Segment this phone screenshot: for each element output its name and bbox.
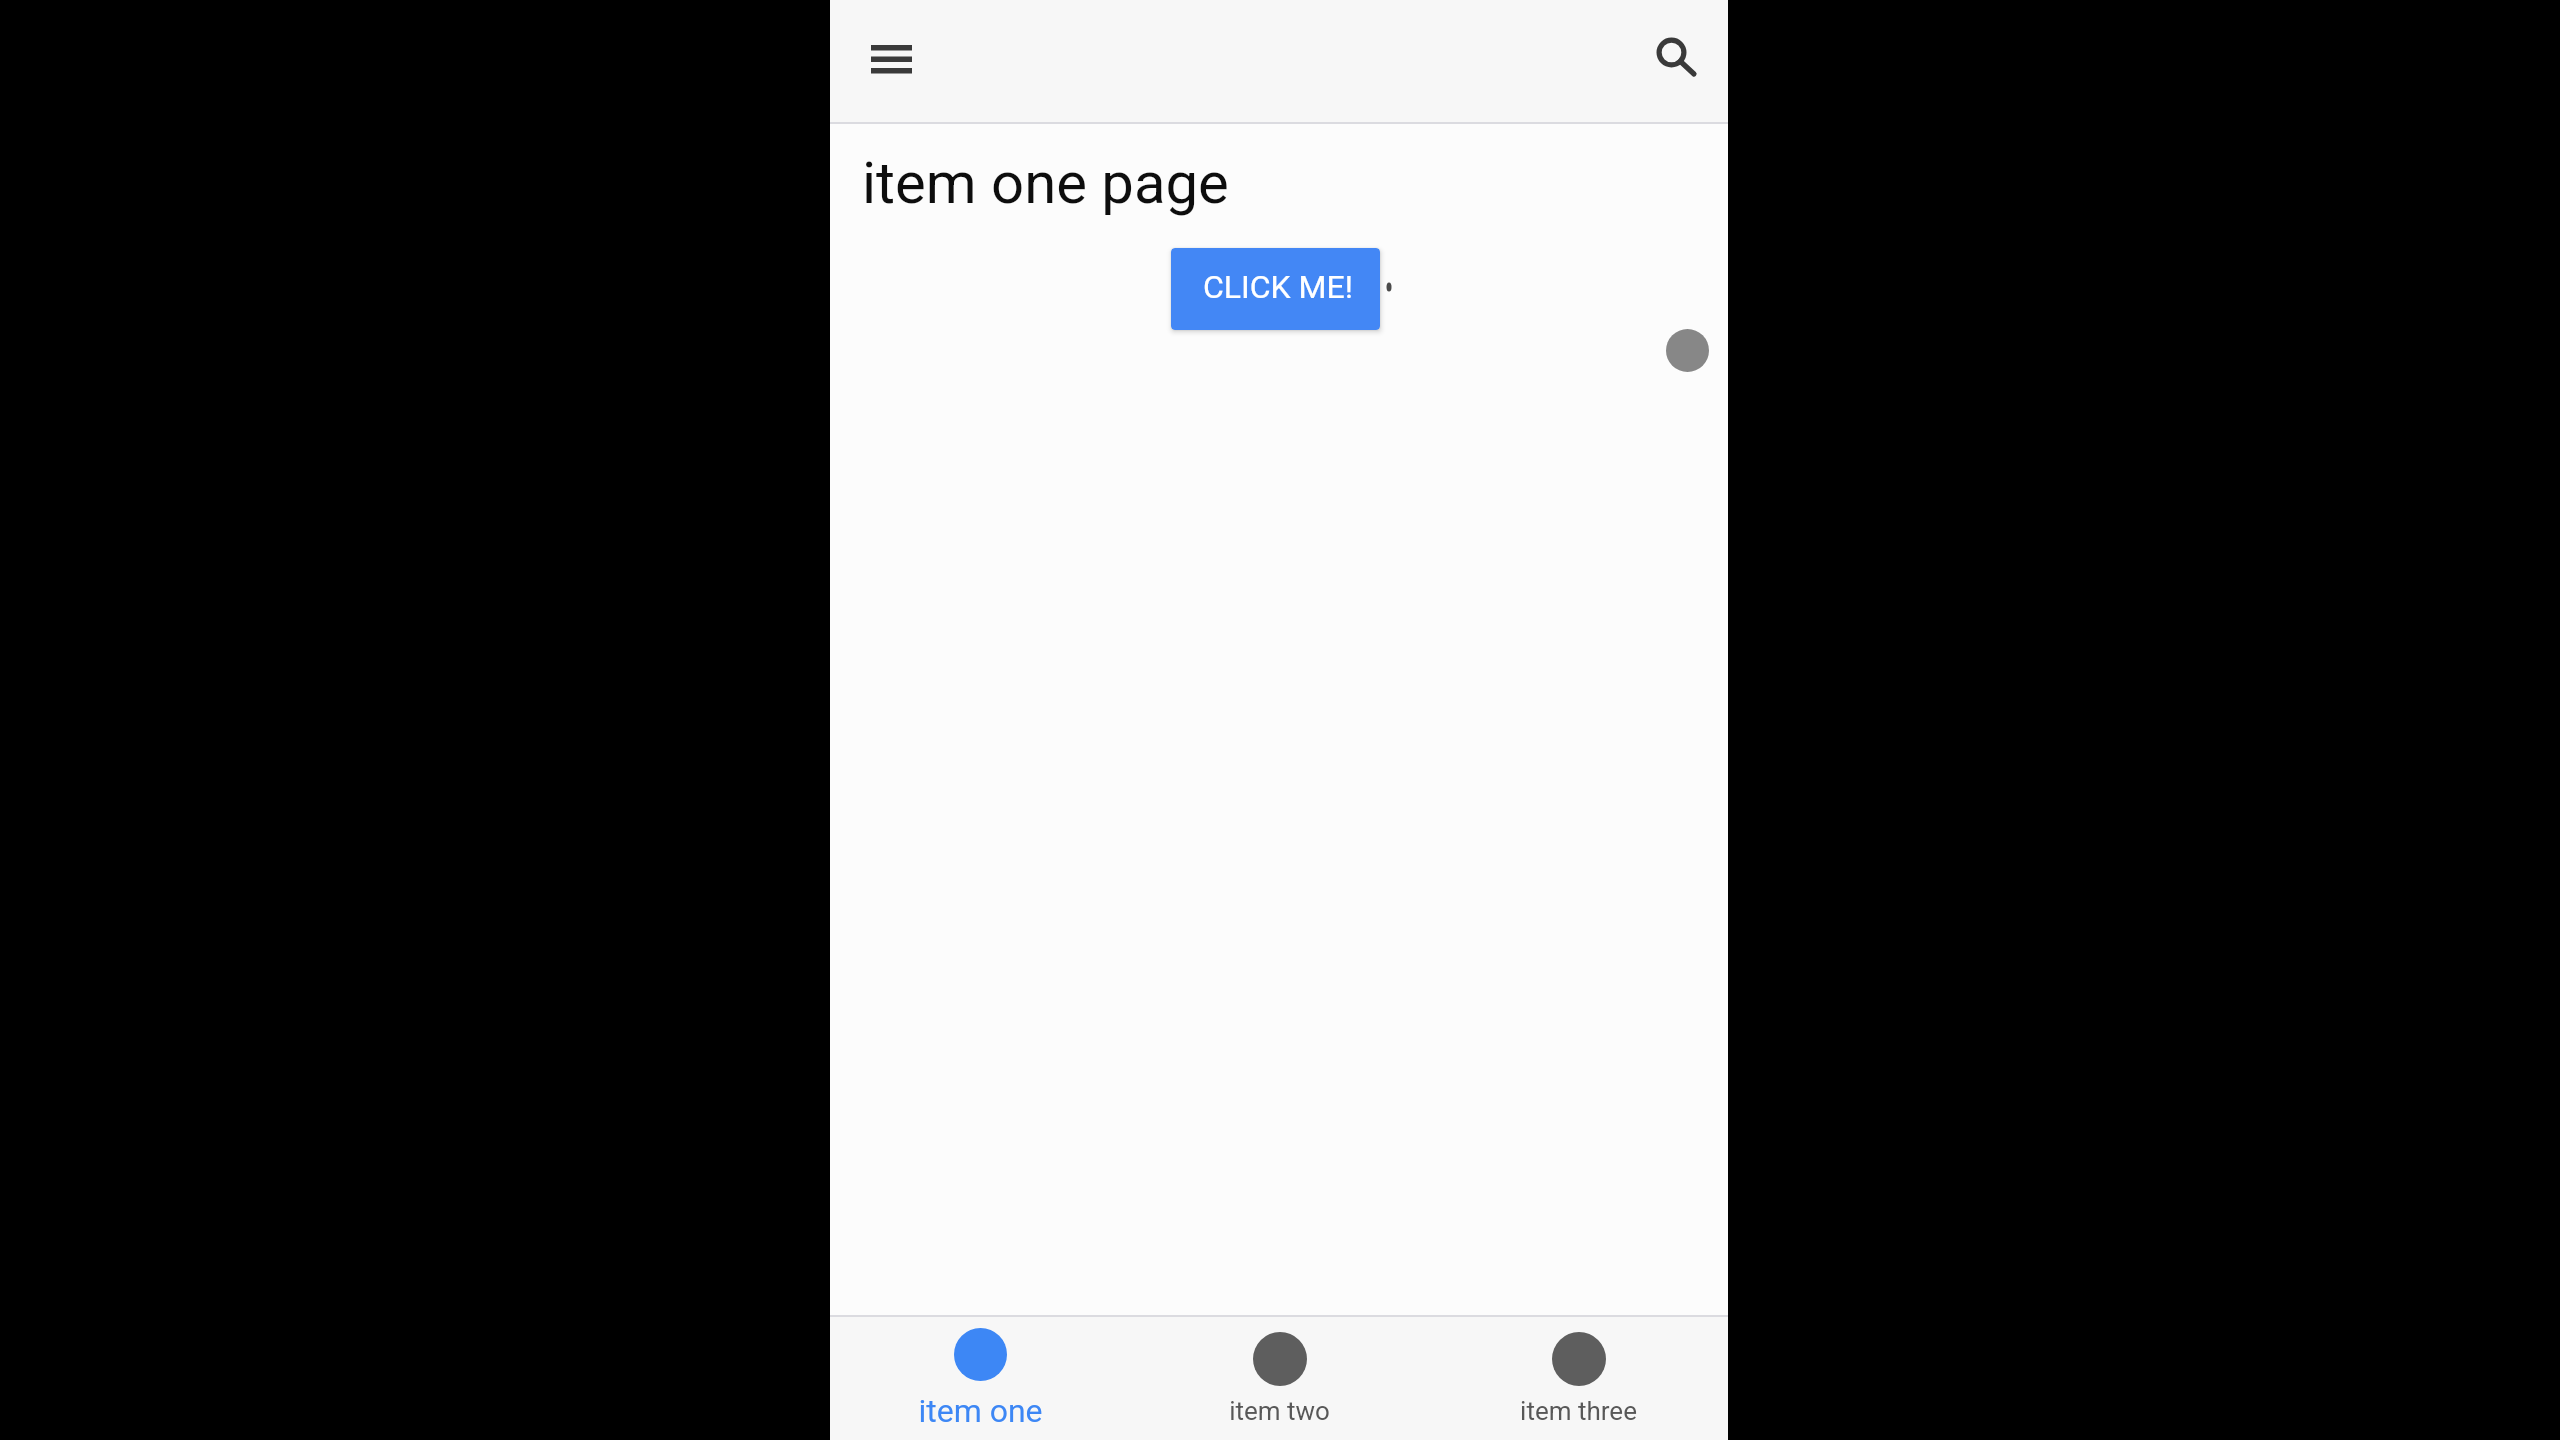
button[interactable]: Search xyxy=(1632,13,1724,111)
staticText: CLICK ME! xyxy=(1203,268,1353,306)
staticText: item two xyxy=(1229,1396,1330,1426)
button[interactable]: Profile xyxy=(1666,329,1709,372)
staticText: item one page xyxy=(862,149,1229,217)
button[interactable]: CLICK ME! xyxy=(1171,248,1380,330)
button[interactable]: item one xyxy=(830,1317,1130,1440)
staticText: item one xyxy=(918,1392,1043,1430)
button[interactable]: item three xyxy=(1429,1317,1728,1440)
button[interactable]: item two xyxy=(1130,1317,1429,1440)
staticText: item three xyxy=(1520,1396,1637,1426)
button[interactable]: Open navigation menu xyxy=(850,13,942,111)
